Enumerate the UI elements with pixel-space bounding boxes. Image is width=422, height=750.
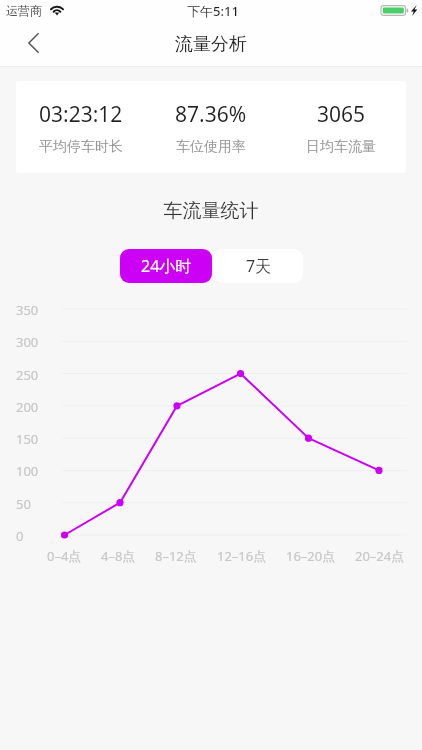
staticText: 03:23:12 xyxy=(39,100,123,129)
staticText: 50 xyxy=(16,495,31,513)
staticText: 8–12点 xyxy=(155,547,197,565)
staticText: 87.36% xyxy=(175,100,247,129)
staticText: 24小时 xyxy=(141,255,192,277)
staticText: 16–20点 xyxy=(286,547,336,565)
staticText: 12–16点 xyxy=(217,547,267,565)
staticText: 3065 xyxy=(317,100,366,129)
staticText: 车流量统计 xyxy=(0,199,422,223)
staticText: 0–4点 xyxy=(47,547,82,565)
button[interactable]: 24小时 xyxy=(120,249,212,283)
staticText: 日均车流量 xyxy=(306,138,376,156)
staticText: 7天 xyxy=(246,255,272,277)
staticText: 250 xyxy=(16,366,39,384)
staticText: 150 xyxy=(16,430,39,448)
staticText: 4–8点 xyxy=(101,547,136,565)
staticText: 0 xyxy=(16,527,24,545)
staticText: 300 xyxy=(16,333,39,351)
staticText: 流量分析 xyxy=(175,33,247,56)
staticText: 100 xyxy=(16,462,39,480)
staticText: 200 xyxy=(16,398,39,416)
staticText: 下午5:11 xyxy=(187,2,239,20)
button[interactable]: 7天 xyxy=(214,249,303,283)
staticText: 20–24点 xyxy=(355,547,405,565)
button[interactable]: Back xyxy=(13,25,53,65)
staticText: 运营商 xyxy=(6,3,42,18)
staticText: 车位使用率 xyxy=(176,138,246,156)
staticText: 350 xyxy=(16,301,39,319)
staticText: 平均停车时长 xyxy=(39,138,123,156)
